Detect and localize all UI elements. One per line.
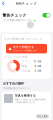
button[interactable]: Protection toggle: [42, 13, 50, 17]
staticText: セキュリティを改善します: [13, 49, 37, 52]
staticText: 12 GB: [33, 60, 41, 63]
staticText: 写真を整理する: [15, 94, 36, 97]
staticText: 空き容量を増やすためのヒント: [3, 87, 31, 90]
button[interactable]: Back: [0, 0, 7, 7]
staticText: 8 GB: [34, 65, 41, 68]
staticText: おすすめの操作: [3, 81, 24, 85]
button[interactable]: 詳しく見る: [36, 114, 49, 119]
staticText: 3 GB: [34, 69, 41, 72]
staticText: このiPhoneは保護されています: [3, 19, 32, 22]
staticText: 安全チェック: [15, 1, 37, 6]
staticText: 警告チェック: [3, 13, 27, 18]
staticText: 写真: [21, 64, 27, 68]
staticText: その他: [21, 69, 30, 72]
staticText: ストレージの内訳: [4, 55, 28, 58]
staticText: アプリ: [21, 60, 30, 63]
button[interactable]: 今すぐ対処する: [6, 44, 47, 53]
staticText: 詳しく見る: [37, 115, 47, 118]
staticText: 重複した写真と大きな動画を削除して容量を確保できます: [15, 98, 47, 104]
staticText: 今すぐ対処する: [13, 45, 34, 49]
staticText: 3 件の問題が見つかりました: [4, 37, 43, 40]
